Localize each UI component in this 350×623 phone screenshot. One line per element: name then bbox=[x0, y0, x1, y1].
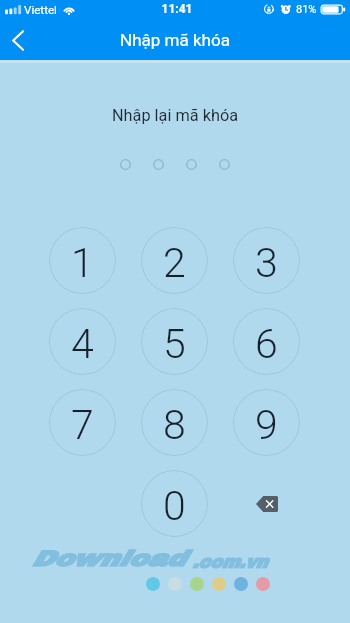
staticText: Download bbox=[31, 547, 185, 570]
button[interactable]: 6 bbox=[233, 308, 300, 375]
staticText: 1 bbox=[71, 239, 94, 287]
button[interactable]: 9 bbox=[233, 389, 300, 456]
button[interactable]: 2 bbox=[141, 227, 208, 294]
staticText: 2 bbox=[163, 239, 186, 287]
staticText: Nhập lại mã khóa bbox=[0, 106, 350, 125]
staticText: .com.vn bbox=[192, 553, 267, 572]
button[interactable]: 1 bbox=[49, 227, 116, 294]
staticText: 3 bbox=[255, 239, 278, 287]
staticText: 11:41 bbox=[2, 2, 350, 16]
staticText: 9 bbox=[255, 401, 278, 449]
staticText: 7 bbox=[71, 401, 94, 449]
button[interactable]: 3 bbox=[233, 227, 300, 294]
staticText: 4 bbox=[71, 320, 94, 368]
staticText: Nhập mã khóa bbox=[0, 30, 350, 50]
button[interactable]: Back bbox=[0, 20, 36, 60]
staticText: 5 bbox=[163, 320, 186, 368]
staticText: 8 bbox=[163, 401, 186, 449]
staticText: 81% bbox=[296, 3, 317, 16]
staticText: 0 bbox=[163, 482, 186, 530]
button[interactable]: 8 bbox=[141, 389, 208, 456]
button[interactable]: Backspace bbox=[233, 470, 300, 537]
staticText: 6 bbox=[255, 320, 278, 368]
button[interactable]: 4 bbox=[49, 308, 116, 375]
button[interactable]: 5 bbox=[141, 308, 208, 375]
button[interactable]: 7 bbox=[49, 389, 116, 456]
staticText: Viettel bbox=[24, 3, 57, 17]
button[interactable]: 0 bbox=[141, 470, 208, 537]
